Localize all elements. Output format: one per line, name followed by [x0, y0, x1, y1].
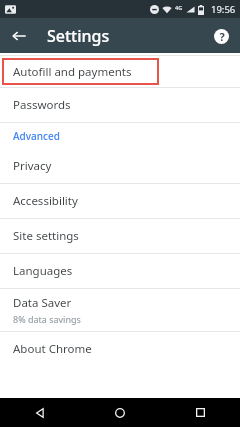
button[interactable]: Data Saver — [0, 289, 240, 331]
staticText: Accessibility — [13, 193, 78, 209]
button[interactable]: Help and feedback — [207, 22, 235, 50]
staticText: About Chrome — [13, 341, 92, 357]
staticText: Data Saver — [13, 295, 72, 311]
button[interactable]: Privacy — [0, 149, 240, 183]
button[interactable]: Autofill and payments — [0, 56, 240, 87]
staticText: 8% data savings — [13, 313, 81, 325]
button[interactable]: Accessibility — [0, 184, 240, 218]
button[interactable]: Passwords — [0, 88, 240, 122]
staticText: ? — [219, 29, 225, 44]
button[interactable]: Back — [3, 20, 35, 52]
staticText: Privacy — [13, 158, 52, 174]
staticText: 4G — [175, 4, 183, 11]
button[interactable]: Back — [0, 398, 80, 427]
staticText: Settings — [47, 25, 110, 47]
button[interactable]: Recent apps — [160, 398, 240, 427]
staticText: Site settings — [13, 228, 79, 244]
button[interactable]: Languages — [0, 254, 240, 288]
button[interactable]: About Chrome — [0, 332, 240, 366]
staticText: Autofill and payments — [13, 64, 132, 80]
button[interactable]: Home — [80, 398, 160, 427]
staticText: Advanced — [13, 129, 60, 143]
staticText: Languages — [13, 263, 73, 279]
staticText: Passwords — [13, 97, 71, 113]
button[interactable]: Site settings — [0, 219, 240, 253]
staticText: 19:56 — [211, 3, 236, 16]
